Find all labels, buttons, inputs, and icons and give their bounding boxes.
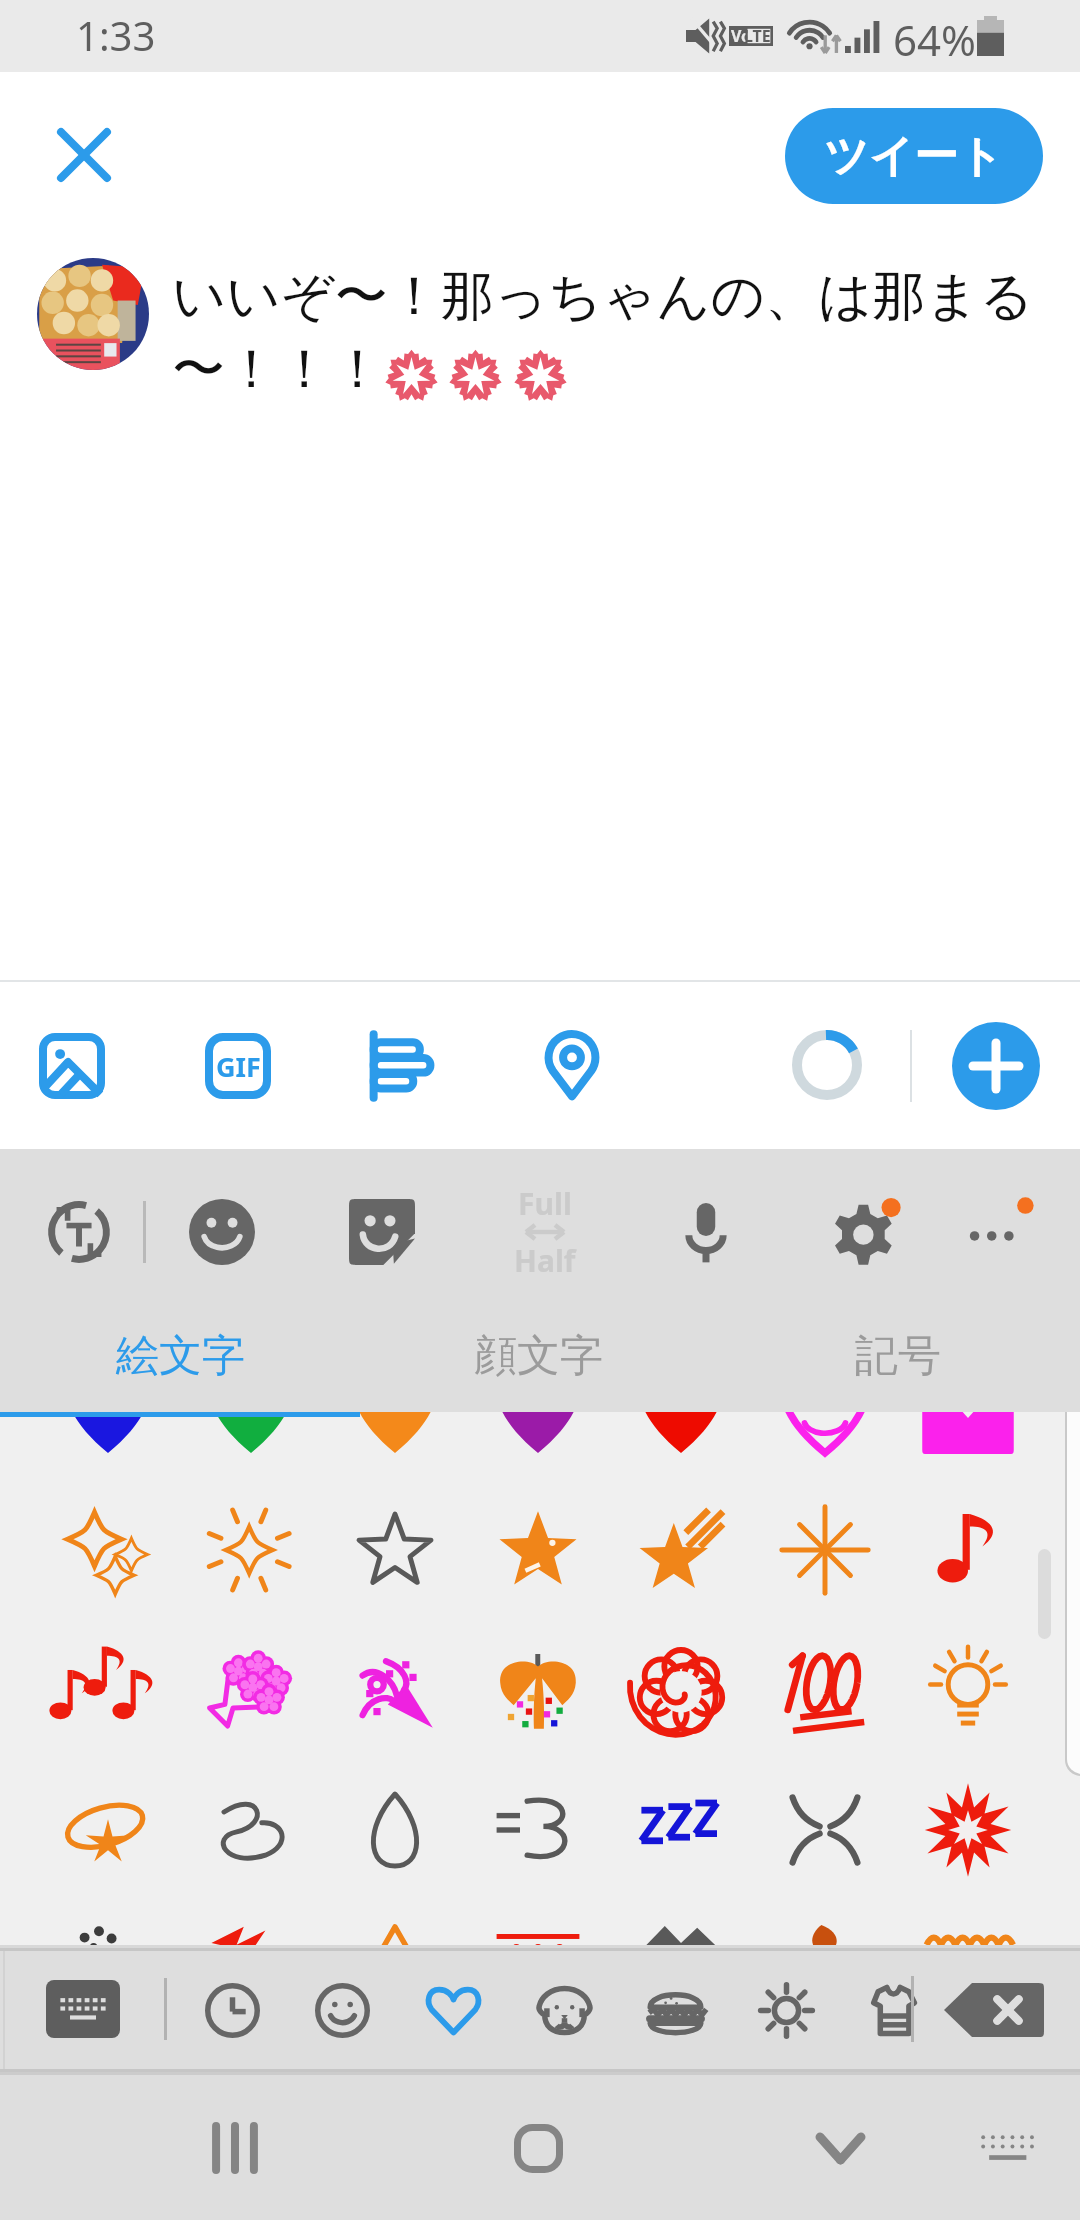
button[interactable]: Emoji: [174, 1184, 270, 1280]
button[interactable]: Close: [40, 111, 128, 199]
button[interactable]: Food: [627, 1964, 723, 2056]
staticText: ツイート: [824, 129, 1004, 184]
staticText: LTE: [744, 25, 771, 45]
staticText: 記号: [855, 1329, 941, 1383]
button[interactable]: Animals: [516, 1964, 612, 2056]
button[interactable]: Character count: [779, 1017, 875, 1113]
button[interactable]: More: [949, 1184, 1045, 1280]
button[interactable]: Add tweet: [952, 1022, 1040, 1110]
button[interactable]: Switch keyboard: [944, 2083, 1074, 2213]
button[interactable]: 絵文字: [20, 1299, 340, 1412]
button[interactable]: Recent: [184, 1964, 280, 2056]
staticText: Vo: [731, 25, 752, 45]
button[interactable]: Recent apps: [170, 2083, 300, 2213]
staticText: 1:33: [76, 8, 156, 62]
staticText: 64%: [893, 11, 976, 68]
staticText: Half: [514, 1240, 576, 1281]
button[interactable]: Voice input: [658, 1184, 754, 1280]
button[interactable]: 記号: [738, 1299, 1058, 1412]
button[interactable]: Keyboard: [46, 1980, 120, 2038]
button[interactable]: Hearts: [405, 1964, 501, 2056]
button[interactable]: Add poll: [358, 1020, 450, 1112]
button[interactable]: Objects: [845, 1964, 941, 2056]
button[interactable]: Backspace: [938, 1978, 1050, 2042]
staticText: Full: [518, 1183, 572, 1224]
button[interactable]: Travel: [738, 1964, 834, 2056]
button[interactable]: Change input: [31, 1184, 127, 1280]
staticText: いいぞ〜！那っちゃんの、は那まる: [172, 263, 1034, 330]
button[interactable]: ツイート: [785, 108, 1043, 204]
button[interactable]: Settings: [818, 1184, 914, 1280]
staticText: GIF: [216, 1048, 261, 1085]
button[interactable]: 顔文字: [378, 1299, 698, 1412]
button[interactable]: Full width / half width: [487, 1175, 603, 1289]
button[interactable]: Smileys: [294, 1964, 390, 2056]
button[interactable]: Stickers: [334, 1184, 430, 1280]
button[interactable]: Hide keyboard: [775, 2083, 905, 2213]
staticText: 絵文字: [116, 1329, 245, 1383]
button[interactable]: Add location: [526, 1020, 618, 1112]
button[interactable]: Home: [473, 2083, 603, 2213]
button[interactable]: Add GIF: [192, 1020, 284, 1112]
button[interactable]: Add photo: [26, 1020, 118, 1112]
staticText: 〜！！！: [172, 336, 384, 403]
staticText: 顔文字: [474, 1329, 603, 1383]
button[interactable]: [37, 258, 149, 370]
